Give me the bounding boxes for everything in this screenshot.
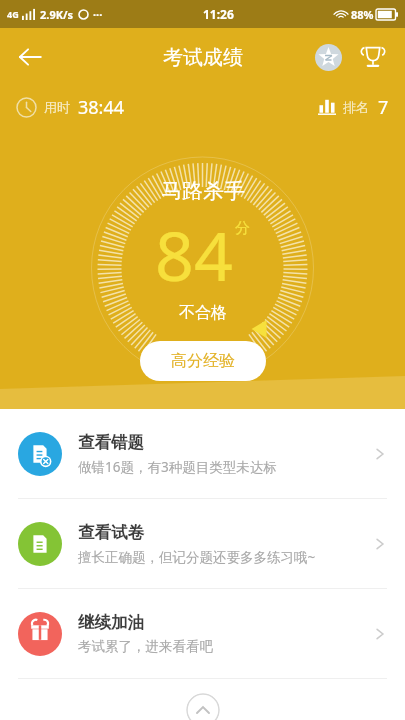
staticText: 高分经验 [171, 351, 235, 371]
staticText: 排名 [343, 99, 369, 115]
staticText: 38:44 [78, 95, 125, 120]
staticText: 查看试卷 [78, 522, 144, 543]
button[interactable]: 继续加油 [0, 589, 405, 678]
button[interactable]: 高分经验 [140, 341, 266, 381]
staticText: 做错16题，有3种题目类型未达标 [78, 458, 277, 476]
staticText: 11:26 [203, 6, 234, 22]
staticText: 88% [351, 7, 374, 22]
staticText: 查看错题 [78, 432, 144, 453]
staticText: 用时 [44, 99, 70, 115]
button[interactable]: Back [8, 35, 52, 79]
staticText: ··· [93, 7, 103, 22]
staticText: 4G [7, 8, 19, 20]
staticText: 继续加油 [78, 612, 144, 633]
button[interactable]: Scroll to top [186, 693, 220, 720]
staticText: 2.9K/s [40, 7, 74, 22]
staticText: 马路杀手 [161, 178, 245, 204]
button[interactable]: Badge [309, 38, 347, 76]
staticText: 分 [235, 219, 250, 238]
staticText: 7 [378, 95, 389, 120]
button[interactable]: 查看错题 [0, 409, 405, 498]
button[interactable]: Trophy [353, 37, 393, 77]
staticText: 考试成绩 [163, 45, 243, 70]
staticText: 不合格 [179, 303, 227, 323]
staticText: 84 [155, 208, 233, 301]
staticText: 考试累了，进来看看吧 [78, 638, 213, 655]
button[interactable]: 查看试卷 [0, 499, 405, 588]
staticText: 擅长正确题，但记分题还要多多练习哦~ [78, 548, 316, 566]
